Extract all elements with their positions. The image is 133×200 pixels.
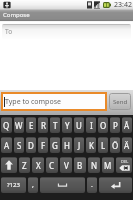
button[interactable]: O [98,117,108,133]
staticText: P [113,120,118,131]
button[interactable]: U [74,117,84,133]
staticText: Y [65,120,70,131]
staticText: ?123 [7,181,20,189]
button[interactable]: , [28,177,38,193]
button[interactable]: L [98,137,108,153]
button[interactable]: Delete [116,157,132,173]
button[interactable]: Z [19,157,30,173]
staticText: B [77,160,83,171]
staticText: C [49,160,55,171]
button[interactable]: Space [40,177,85,193]
button[interactable]: I [86,117,96,133]
button[interactable]: ?123 [1,177,26,193]
staticText: Ä [124,140,130,151]
staticText: F [41,140,46,151]
button[interactable]: A [1,137,12,153]
staticText: X [36,160,41,171]
staticText: Z [22,160,27,171]
staticText: Q [3,120,10,131]
staticText: H [64,140,70,151]
button[interactable]: Q [1,117,12,133]
button[interactable]: . [87,177,97,193]
button[interactable]: X [32,157,44,173]
button[interactable]: Send [109,93,131,110]
staticText: S [17,140,22,151]
staticText: Send [113,98,128,106]
staticText: T [53,120,58,131]
staticText: Compose [3,11,30,19]
staticText: I [90,120,93,131]
button[interactable]: W [14,117,24,133]
staticText: Type to compose [5,97,61,107]
button[interactable]: P [110,117,120,133]
button[interactable]: M [102,157,114,173]
staticText: K [89,140,94,151]
staticText: O [100,120,107,131]
staticText: To [5,27,13,36]
button[interactable]: To [2,24,131,39]
staticText: U [76,120,82,131]
staticText: , [32,180,34,190]
button[interactable]: B [74,157,86,173]
button[interactable]: V [60,157,72,173]
button[interactable]: Type to compose [1,92,107,111]
staticText: J [78,140,81,151]
button[interactable]: E [26,117,36,133]
staticText: Å [124,120,130,131]
staticText: 23:42 [114,0,132,9]
button[interactable]: Å [122,117,132,133]
staticText: W [15,120,23,131]
button[interactable]: Ö [110,137,120,153]
button[interactable]: Ä [122,137,132,153]
staticText: V [64,160,69,171]
staticText: L [101,140,106,151]
button[interactable]: R [38,117,48,133]
staticText: DEL [121,159,129,164]
staticText: D [28,140,34,151]
staticText: G [52,140,58,151]
button[interactable]: Notification [3,1,11,9]
button[interactable]: C [46,157,58,173]
staticText: M [104,160,112,171]
staticText: E [29,120,34,131]
button[interactable]: S [14,137,24,153]
button[interactable]: J [74,137,84,153]
staticText: A [4,140,10,151]
button[interactable]: T [50,117,60,133]
staticText: . [91,180,93,190]
staticText: N [91,160,98,171]
button[interactable]: G [50,137,60,153]
staticText: R [41,120,46,131]
button[interactable]: K [86,137,96,153]
button[interactable]: Enter [99,177,132,193]
staticText: Ö [112,140,119,151]
button[interactable]: H [62,137,72,153]
button[interactable]: Y [62,117,72,133]
button[interactable]: Shift [1,157,17,173]
button[interactable]: F [38,137,48,153]
button[interactable]: N [88,157,100,173]
button[interactable]: D [26,137,36,153]
